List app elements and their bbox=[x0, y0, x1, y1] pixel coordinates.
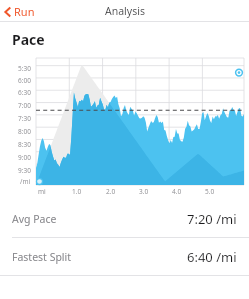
staticText: 5.0 bbox=[205, 187, 215, 196]
staticText: 7:30 bbox=[18, 114, 31, 123]
staticText: mi bbox=[38, 187, 46, 196]
staticText: 3.0 bbox=[139, 187, 149, 196]
staticText: 6:40 /mi bbox=[187, 248, 237, 266]
staticText: 4.0 bbox=[172, 187, 182, 196]
staticText: 6:30 bbox=[18, 88, 31, 97]
staticText: 8:00 bbox=[18, 127, 31, 136]
staticText: 9:00 bbox=[18, 153, 31, 162]
staticText: Avg Pace bbox=[12, 212, 57, 226]
staticText: 1.0 bbox=[72, 187, 82, 196]
staticText: Run bbox=[14, 4, 35, 19]
staticText: Pace bbox=[12, 30, 45, 49]
staticText: /mi bbox=[20, 177, 31, 186]
staticText: 7:00 bbox=[18, 101, 31, 110]
button[interactable]: Avg Pace bbox=[0, 200, 249, 237]
staticText: 5:30 bbox=[18, 64, 31, 73]
staticText: Fastest Split bbox=[12, 250, 72, 264]
staticText: 9:30 bbox=[18, 166, 31, 175]
staticText: 6:00 bbox=[18, 76, 31, 85]
staticText: Analysis bbox=[105, 4, 145, 18]
button[interactable]: Fastest Split bbox=[0, 238, 249, 275]
staticText: 7:20 /mi bbox=[187, 210, 237, 228]
staticText: 8:30 bbox=[18, 140, 31, 149]
button[interactable]: Back to Run bbox=[0, 1, 43, 22]
staticText: 2.0 bbox=[106, 187, 116, 196]
